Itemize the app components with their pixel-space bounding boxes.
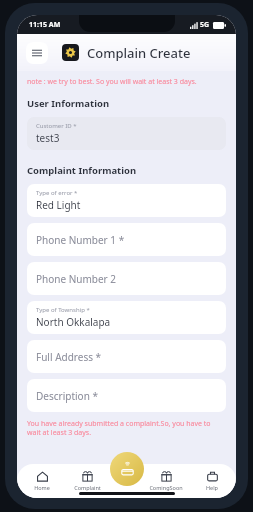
staticText: Full Address * [36, 350, 102, 364]
staticText: Type of error * [36, 189, 78, 197]
staticText: note : we try to best. So you will wait … [27, 77, 197, 87]
button[interactable]: Type of error * [27, 184, 226, 217]
button[interactable]: ComingSoon [145, 469, 187, 493]
staticText: North Okkalapa [36, 315, 111, 329]
button[interactable]: Pay [110, 452, 144, 486]
staticText: Complain Create [87, 44, 191, 62]
staticText: Phone Number 1 * [36, 233, 125, 247]
staticText: Type of Township * [36, 306, 90, 314]
button[interactable]: Customer ID * [27, 117, 226, 150]
staticText: test3 [36, 131, 60, 145]
staticText: User Information [27, 97, 110, 110]
staticText: 5G [200, 20, 210, 30]
button[interactable]: Home [21, 469, 63, 493]
button[interactable]: Complaint [66, 469, 108, 493]
button[interactable]: Menu [26, 42, 48, 64]
button[interactable]: Type of Township * [27, 301, 226, 334]
staticText: Complaint Information [27, 164, 137, 177]
staticText: Customer ID * [36, 122, 77, 130]
button[interactable]: Help [191, 469, 233, 493]
staticText: Help [206, 484, 218, 491]
button[interactable]: Phone Number 1 * [27, 223, 226, 256]
staticText: 11:15 AM [29, 20, 61, 30]
staticText: Red Light [36, 198, 81, 212]
staticText: ComingSoon [149, 484, 183, 491]
staticText: You have already submitted a complaint.S… [27, 419, 226, 437]
button[interactable]: Description * [27, 379, 226, 412]
staticText: Phone Number 2 [36, 272, 117, 286]
staticText: Home [34, 484, 50, 491]
button[interactable]: Full Address * [27, 340, 226, 373]
staticText: Description * [36, 389, 98, 403]
staticText: Complaint [74, 484, 101, 491]
button[interactable]: Phone Number 2 [27, 262, 226, 295]
